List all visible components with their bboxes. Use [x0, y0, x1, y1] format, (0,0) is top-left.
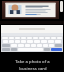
staticText: business card [19, 66, 47, 72]
button[interactable]: Key [25, 44, 30, 47]
button[interactable]: Key [49, 44, 54, 47]
button[interactable]: Key [41, 40, 47, 43]
button[interactable]: Business card photo [0, 0, 64, 21]
button[interactable]: Key [57, 37, 62, 39]
button[interactable]: Key [45, 37, 50, 39]
button[interactable]: Key [48, 40, 54, 43]
button[interactable]: Key [39, 37, 44, 39]
staticText: Take a photo of a [15, 59, 50, 65]
button[interactable]: Key [27, 40, 33, 43]
button[interactable]: Key [15, 40, 20, 43]
button[interactable]: Key [3, 40, 8, 43]
button[interactable]: Key [15, 37, 20, 39]
button[interactable]: Key [55, 40, 61, 43]
button[interactable]: Key [21, 40, 26, 43]
button[interactable]: Key [2, 37, 8, 39]
button[interactable]: Key [51, 48, 62, 51]
button[interactable]: Key [27, 37, 32, 39]
button[interactable]: Key [9, 40, 14, 43]
button[interactable]: Take a photo of a [0, 56, 64, 72]
button[interactable]: Key [21, 37, 26, 39]
button[interactable]: Key [11, 44, 17, 47]
button[interactable]: Key [33, 37, 38, 39]
button[interactable]: Key [34, 40, 40, 43]
button[interactable]: Key [31, 44, 36, 47]
button[interactable]: Key [9, 37, 14, 39]
button[interactable]: Key [37, 44, 42, 47]
button[interactable]: Key [51, 37, 56, 39]
button[interactable]: Key [43, 44, 48, 47]
button[interactable]: Key [18, 44, 24, 47]
button[interactable]: Capture [60, 1, 63, 12]
